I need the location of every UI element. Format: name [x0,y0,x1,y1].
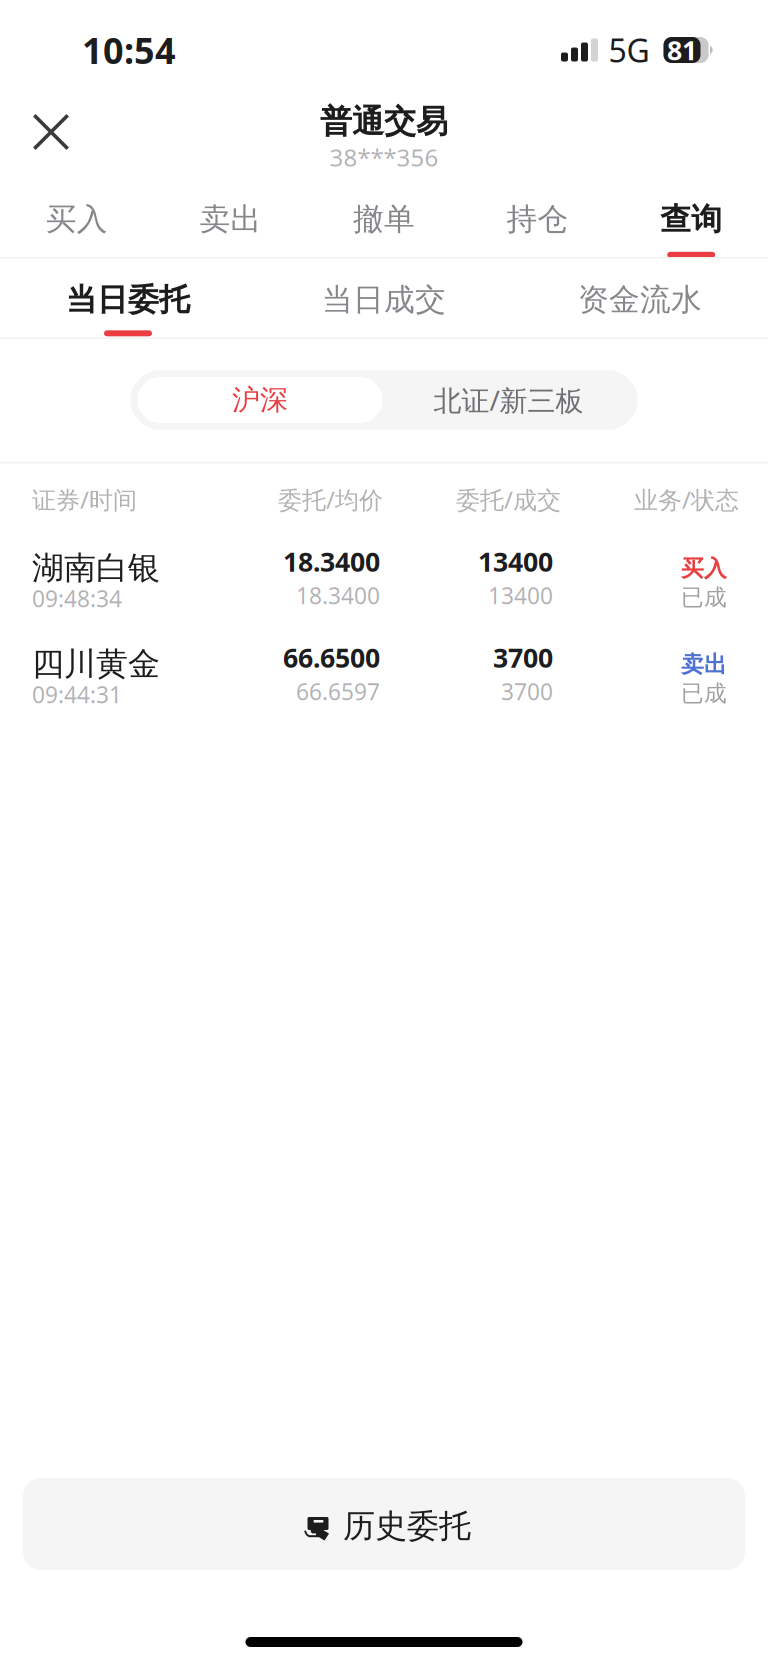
staticText: 09:44:31 [32,679,122,709]
staticText: 09:48:34 [32,583,122,613]
staticText: 66.6500 [283,640,380,675]
staticText: 已成 [681,680,727,707]
button[interactable]: 买入 [0,186,154,257]
button[interactable]: 沪深 [137,377,382,423]
staticText: 证券/时间 [32,484,137,515]
staticText: 卖出 [199,201,261,238]
staticText: 81 [667,32,697,68]
button[interactable]: Close [14,95,88,169]
staticText: 13400 [488,580,553,610]
staticText: 66.6597 [296,676,380,706]
staticText: 委托/均价 [278,484,383,515]
staticText: 持仓 [507,201,569,238]
staticText: 已成 [681,584,727,611]
staticText: 10:54 [82,26,176,74]
staticText: 查询 [660,201,722,238]
staticText: 当日委托 [66,281,190,319]
staticText: 买入 [46,201,108,238]
staticText: 北证/新三板 [433,381,583,419]
button[interactable]: 历史委托 [23,1478,745,1570]
staticText: 38***356 [329,141,438,173]
button[interactable]: 持仓 [461,186,614,257]
staticText: 18.3400 [296,580,380,610]
staticText: 资金流水 [578,281,702,319]
staticText: 历史委托 [343,1506,471,1546]
staticText: 3700 [493,640,553,675]
staticText: 5G [608,29,649,71]
button[interactable]: 北证/新三板 [382,377,634,423]
staticText: 3700 [501,676,553,706]
staticText: 普通交易 [320,102,448,141]
button[interactable]: 卖出 [154,186,307,257]
staticText: 四川黄金 [32,644,160,684]
staticText: 业务/状态 [634,484,739,515]
staticText: 委托/成交 [456,484,561,515]
staticText: 湖南白银 [32,548,160,588]
staticText: 沪深 [232,383,288,417]
button[interactable]: 撤单 [307,186,461,257]
button[interactable]: 资金流水 [512,258,768,337]
button[interactable]: 当日成交 [256,258,512,337]
staticText: 13400 [478,544,553,579]
staticText: 买入 [681,555,727,582]
staticText: 撤单 [353,201,415,238]
staticText: 当日成交 [322,281,446,319]
button[interactable]: 湖南白银 [0,535,768,631]
button[interactable]: 查询 [614,186,768,257]
staticText: 卖出 [681,651,727,678]
button[interactable]: 当日委托 [0,258,256,337]
staticText: 18.3400 [283,544,380,579]
button[interactable]: 四川黄金 [0,631,768,727]
